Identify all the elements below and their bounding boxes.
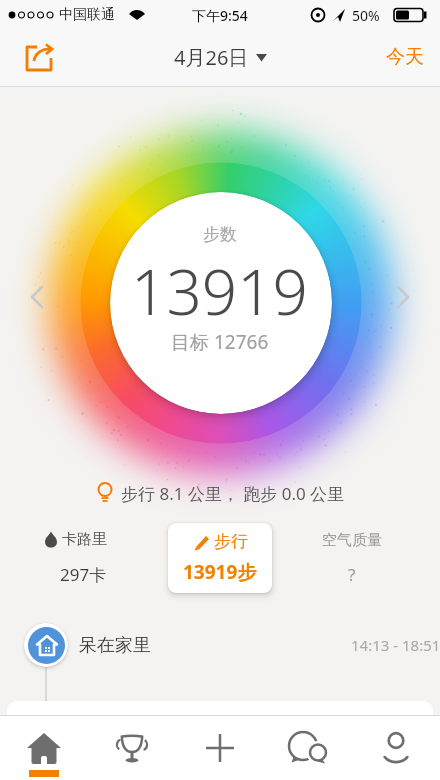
staticText: 卡路里: [62, 530, 107, 549]
staticText: 步行 8.1 公里， 跑步 0.0 公里: [121, 482, 345, 505]
button[interactable]: [264, 716, 352, 780]
staticText: 下午9:54: [192, 6, 248, 25]
staticText: 空气质量: [322, 531, 382, 550]
button[interactable]: 4月26日: [174, 44, 267, 71]
staticText: 今天: [386, 45, 424, 69]
staticText: ?: [348, 563, 356, 586]
button[interactable]: 呆在家里: [24, 623, 440, 667]
staticText: 步行: [214, 531, 248, 552]
staticText: 13919步: [183, 559, 257, 585]
staticText: 目标 12766: [171, 329, 269, 355]
staticText: 297卡: [60, 563, 107, 586]
button[interactable]: [0, 716, 88, 780]
staticText: 50%: [352, 6, 380, 25]
button[interactable]: [18, 38, 62, 78]
button[interactable]: 步行: [168, 523, 272, 593]
button[interactable]: [352, 716, 440, 780]
button[interactable]: 今天: [386, 45, 424, 69]
staticText: 14:13 - 18:51: [351, 635, 440, 655]
button[interactable]: [390, 283, 414, 313]
button[interactable]: [26, 283, 50, 313]
staticText: 中国联通: [59, 6, 115, 24]
button[interactable]: [176, 716, 264, 780]
staticText: 呆在家里: [79, 634, 151, 657]
button[interactable]: [88, 716, 176, 780]
staticText: 4月26日: [174, 44, 249, 71]
staticText: 13919: [131, 249, 309, 319]
staticText: 步数: [203, 224, 237, 245]
